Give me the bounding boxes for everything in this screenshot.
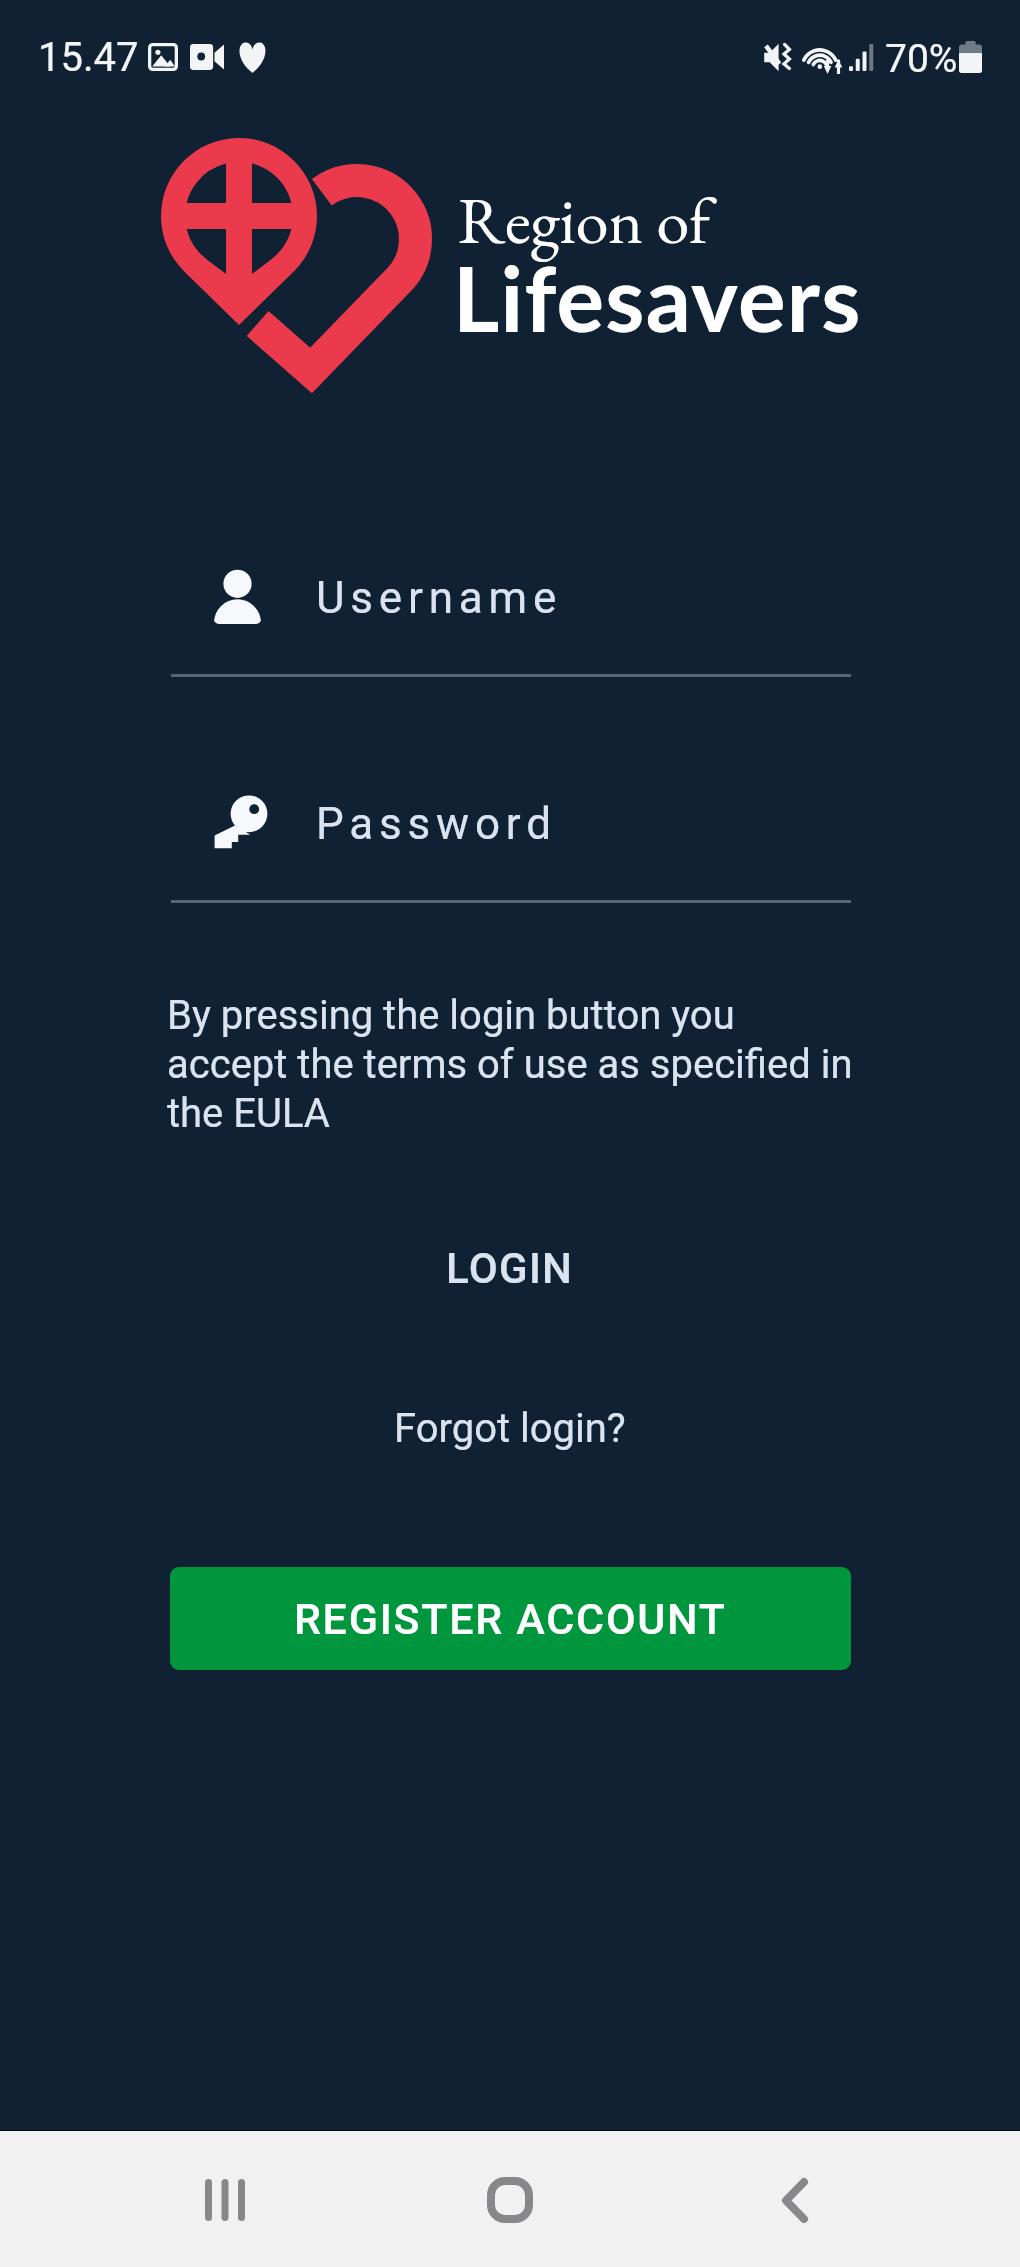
staticText: Password bbox=[316, 798, 557, 850]
staticText: Lifesavers bbox=[453, 244, 862, 351]
staticText: Forgot login? bbox=[394, 1405, 626, 1452]
button[interactable]: Back bbox=[710, 2150, 880, 2250]
staticText: LOGIN bbox=[446, 1244, 574, 1293]
staticText: Username bbox=[316, 572, 563, 624]
button[interactable]: Forgot login? bbox=[0, 1388, 1020, 1468]
button[interactable]: REGISTER ACCOUNT bbox=[170, 1567, 851, 1670]
staticText: Region of bbox=[458, 177, 711, 263]
staticText: 70% bbox=[885, 36, 958, 82]
button[interactable]: Recent apps bbox=[140, 2150, 310, 2250]
button[interactable]: LOGIN bbox=[0, 1228, 1020, 1308]
staticText: 15.47 bbox=[38, 34, 139, 81]
staticText: By pressing the login button you accept … bbox=[167, 992, 859, 1137]
staticText: REGISTER ACCOUNT bbox=[294, 1594, 727, 1644]
button[interactable]: Home bbox=[425, 2150, 595, 2250]
